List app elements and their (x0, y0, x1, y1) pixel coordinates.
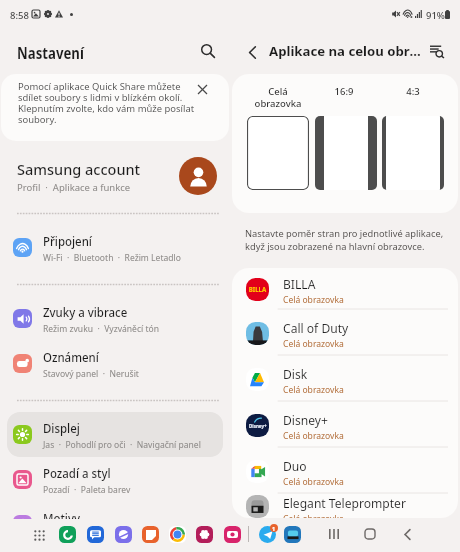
staticText: Celá obrazovka (283, 512, 344, 518)
button[interactable]: Disney+ (232, 402, 458, 448)
staticText: Profil · Aplikace a funkce (17, 181, 131, 194)
button[interactable]: Hledat v seznamu (424, 38, 450, 64)
staticText: Pozadí a styl (43, 464, 111, 482)
button[interactable]: Aplikace (28, 524, 50, 546)
button[interactable]: Zvuky a vibrace (7, 296, 223, 341)
staticText: Celá obrazovka (246, 85, 310, 110)
button[interactable]: Připojení (7, 225, 223, 270)
button[interactable]: Aplikace (169, 526, 186, 543)
staticText: 91% (426, 9, 445, 22)
staticText: Disney+ (249, 423, 267, 430)
staticText: Celá obrazovka (283, 293, 344, 305)
button[interactable]: Disk (232, 356, 458, 402)
staticText: BILLA (283, 276, 316, 293)
staticText: 8:58 (10, 9, 29, 22)
button[interactable]: Aplikace (224, 526, 241, 543)
button[interactable]: Elegant Teleprompter (232, 494, 458, 518)
button[interactable]: Duo (232, 448, 458, 494)
staticText: Samsung account (17, 159, 141, 179)
staticText: Pomocí aplikace Quick Share můžete sdíle… (18, 80, 196, 125)
button[interactable]: Pozadí a styl (7, 457, 223, 502)
button[interactable]: BILLA (232, 268, 458, 310)
staticText: Disney+ (283, 412, 328, 429)
button[interactable]: Zpět (240, 40, 264, 64)
staticText: Displej (43, 419, 80, 437)
button[interactable]: Samsung account (0, 153, 230, 199)
staticText: Celá obrazovka (283, 429, 344, 441)
staticText: 4:3 (382, 85, 444, 98)
staticText: Call of Duty (283, 320, 348, 337)
button[interactable]: Pomocí aplikace Quick Share můžete sdíle… (1, 74, 229, 141)
button[interactable]: Aplikace (142, 526, 159, 543)
staticText: Zvuky a vibrace (43, 303, 127, 321)
button[interactable]: Motivy (7, 502, 223, 547)
staticText: 1 (272, 525, 276, 532)
staticText: Pozadí · Paleta barev (43, 483, 130, 495)
staticText: Stavový panel · Nerušit (43, 367, 139, 379)
staticText: Disk (283, 366, 308, 383)
button[interactable]: Domů (358, 522, 382, 546)
button[interactable]: Poslední aplikace (322, 522, 346, 546)
staticText: Duo (283, 458, 307, 475)
button[interactable]: Aplikace (87, 526, 104, 543)
staticText: Elegant Teleprompter (283, 495, 407, 512)
staticText: Wi-Fi · Bluetooth · Režim Letadlo (43, 251, 182, 263)
button[interactable]: Oznámení (7, 341, 223, 386)
staticText: Režim zvuku · Vyzváněcí tón (43, 322, 160, 334)
staticText: Nastavte poměr stran pro jednotlivé apli… (245, 227, 455, 252)
staticText: Celá obrazovka (283, 475, 344, 487)
staticText: Nastavení (17, 41, 84, 63)
staticText: Motivy (43, 509, 81, 527)
staticText: Celá obrazovka (283, 337, 344, 349)
button[interactable]: Zpět (395, 522, 419, 546)
staticText: Aplikace na celou obra… (269, 42, 421, 60)
button[interactable]: Telegram (259, 526, 276, 543)
staticText: Motivy · Tapety (43, 528, 108, 540)
staticText: BILLA (249, 285, 266, 294)
staticText: Celá obrazovka (283, 383, 344, 395)
button[interactable]: Aplikace (284, 526, 301, 543)
button[interactable]: Aplikace (59, 526, 76, 543)
staticText: Připojení (43, 232, 92, 250)
staticText: Jas · Pohodlí pro oči · Navigační panel (43, 438, 202, 450)
button[interactable]: Displej (7, 412, 223, 457)
button[interactable]: Hledat (194, 37, 222, 65)
button[interactable]: Aplikace (196, 526, 213, 543)
button[interactable]: Call of Duty (232, 310, 458, 356)
staticText: 16:9 (313, 85, 375, 98)
button[interactable]: Aplikace (115, 526, 132, 543)
staticText: Oznámení (43, 348, 99, 366)
button[interactable]: Zavřít (190, 77, 214, 101)
